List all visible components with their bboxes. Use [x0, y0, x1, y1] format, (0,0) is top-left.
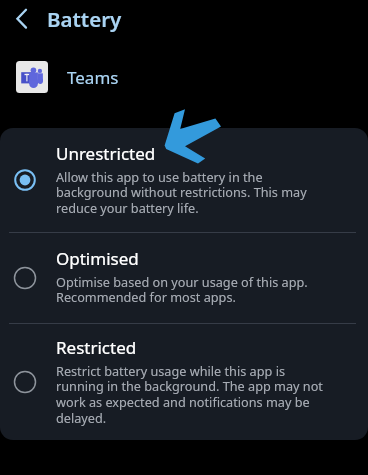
button[interactable]: Optimised — [0, 233, 368, 323]
staticText: Restricted — [56, 336, 137, 359]
staticText: Optimise based on your usage of this app… — [56, 273, 308, 306]
button[interactable]: Back — [0, 0, 42, 38]
staticText: Teams — [67, 66, 119, 89]
button[interactable]: Unrestricted — [0, 128, 368, 232]
staticText: Optimised — [56, 247, 139, 270]
staticText: Unrestricted — [56, 142, 156, 165]
staticText: Allow this app to use battery in the bac… — [56, 168, 307, 217]
button[interactable]: Teams — [0, 57, 368, 97]
button[interactable]: Restricted — [0, 324, 368, 440]
staticText: Restrict battery usage while this app is… — [56, 362, 323, 427]
staticText: Battery — [47, 5, 122, 33]
